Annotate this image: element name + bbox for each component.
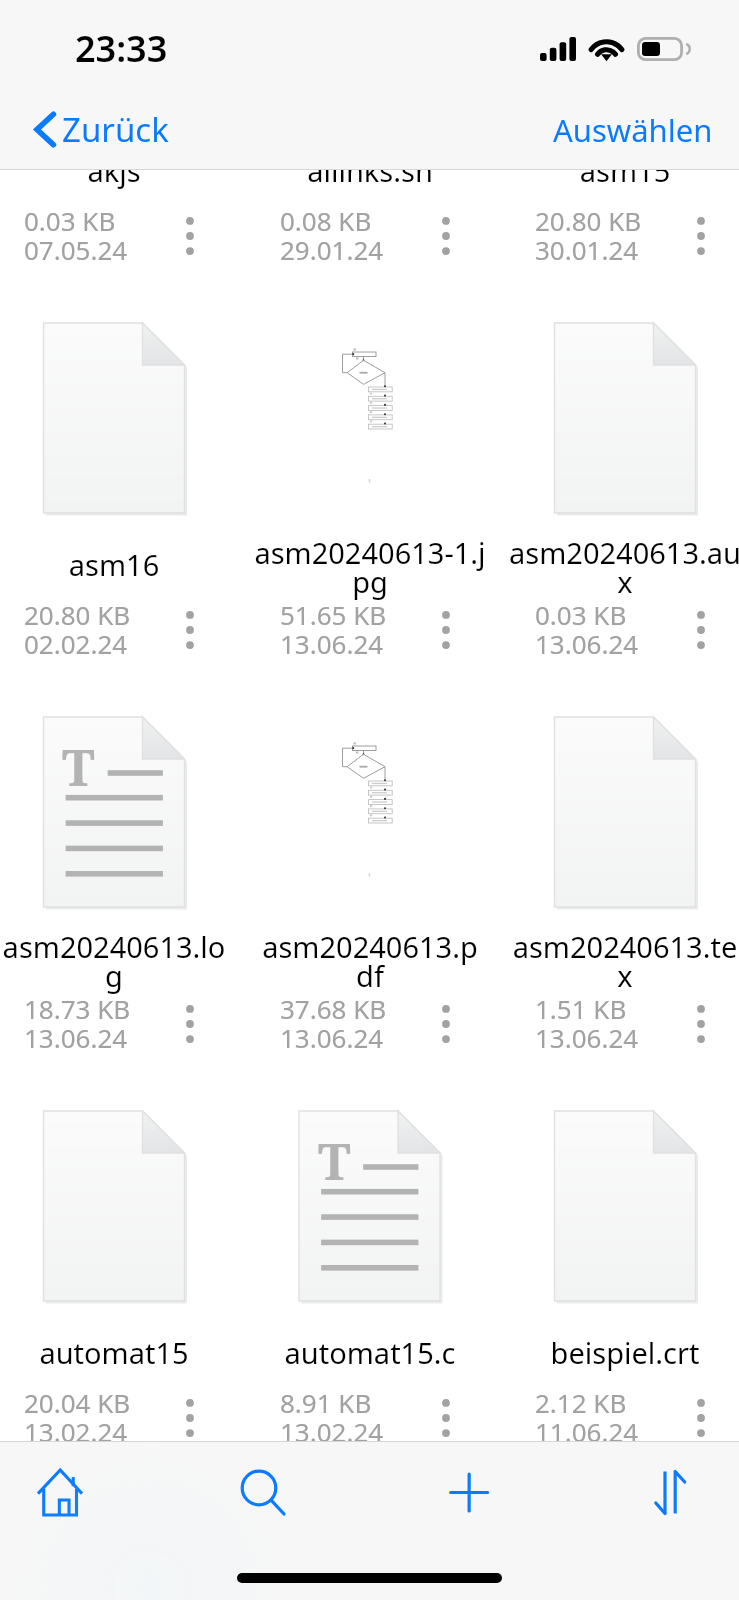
staticText: 13.06.24 (280, 1020, 384, 1055)
staticText: 0.03 KB (24, 203, 116, 238)
button[interactable] (242, 1101, 498, 1431)
button[interactable] (497, 1101, 739, 1431)
button[interactable]: More options (676, 206, 726, 266)
staticText: asm20240613.au (495, 533, 739, 572)
staticText: akjs (0, 151, 244, 190)
button[interactable]: Auswählen (541, 90, 725, 169)
staticText: 0.08 KB (280, 203, 372, 238)
button[interactable]: More options (421, 600, 471, 660)
staticText: 20.80 KB (24, 597, 131, 632)
button[interactable] (242, 313, 498, 643)
staticText: 13.06.24 (280, 626, 384, 661)
button[interactable] (0, 313, 242, 643)
staticText: T (318, 1127, 351, 1195)
staticText: asm20240613.te (495, 927, 739, 966)
staticText: 30.01.24 (535, 232, 639, 267)
staticText: 18.73 KB (24, 991, 131, 1026)
staticText: 8.91 KB (280, 1385, 372, 1420)
staticText: 13.06.24 (535, 626, 639, 661)
staticText: 1.51 KB (535, 991, 627, 1026)
staticText: pg (240, 562, 500, 601)
button[interactable] (0, 707, 242, 1037)
button[interactable]: Add (420, 1442, 524, 1543)
staticText: x (495, 956, 739, 995)
staticText: asm16 (0, 545, 244, 584)
button[interactable]: More options (421, 206, 471, 266)
button[interactable] (497, 0, 739, 249)
button[interactable] (497, 707, 739, 1037)
button[interactable]: More options (676, 994, 726, 1054)
button[interactable]: Search (211, 1442, 315, 1543)
button[interactable]: More options (165, 1388, 215, 1448)
button[interactable]: More options (421, 1388, 471, 1448)
button[interactable]: More options (165, 206, 215, 266)
button[interactable]: Home (8, 1442, 112, 1543)
staticText: 13.02.24 (280, 1414, 384, 1449)
staticText: Zurück (62, 107, 169, 152)
button[interactable] (242, 0, 498, 249)
staticText: 11.06.24 (535, 1414, 639, 1449)
staticText: 13.02.24 (24, 1414, 128, 1449)
staticText: T (62, 733, 95, 801)
staticText: allinks.sh (240, 151, 500, 190)
staticText: 23:33 (75, 24, 168, 73)
staticText: 20.80 KB (535, 203, 642, 238)
button[interactable]: Sort (625, 1442, 729, 1543)
staticText: 13.06.24 (535, 1020, 639, 1055)
staticText: 02.02.24 (24, 626, 128, 661)
staticText: automat15.c (240, 1333, 500, 1372)
staticText: asm20240613.p (240, 927, 500, 966)
staticText: 0.03 KB (535, 597, 627, 632)
staticText: asm20240613-1.j (240, 533, 500, 572)
button[interactable] (0, 0, 242, 249)
button[interactable]: More options (676, 600, 726, 660)
staticText: df (240, 956, 500, 995)
staticText: beispiel.crt (495, 1333, 739, 1372)
staticText: automat15 (0, 1333, 244, 1372)
staticText: 2.12 KB (535, 1385, 627, 1420)
button[interactable] (497, 313, 739, 643)
staticText: asm20240613.lo (0, 927, 244, 966)
button[interactable]: Zurück (23, 90, 181, 169)
staticText: 29.01.24 (280, 232, 384, 267)
staticText: 37.68 KB (280, 991, 387, 1026)
button[interactable] (0, 1101, 242, 1431)
button[interactable]: More options (421, 994, 471, 1054)
button[interactable]: More options (676, 1388, 726, 1448)
button[interactable]: More options (165, 600, 215, 660)
staticText: Auswählen (553, 109, 713, 151)
staticText: 07.05.24 (24, 232, 128, 267)
staticText: asm15 (495, 151, 739, 190)
staticText: g (0, 956, 244, 995)
button[interactable]: More options (165, 994, 215, 1054)
staticText: 51.65 KB (280, 597, 387, 632)
button[interactable] (242, 707, 498, 1037)
staticText: x (495, 562, 739, 601)
staticText: 13.06.24 (24, 1020, 128, 1055)
staticText: 20.04 KB (24, 1385, 131, 1420)
